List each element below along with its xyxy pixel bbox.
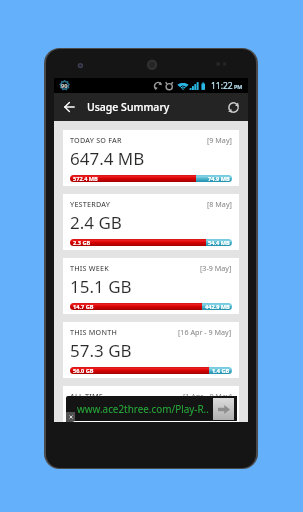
button[interactable]: ALL TIME	[63, 386, 239, 422]
staticText: [3-9 May]	[200, 263, 232, 273]
staticText: 647.4 MB	[70, 147, 145, 170]
staticText: THIS MONTH	[70, 327, 118, 337]
staticText: 81.4 GB	[70, 403, 132, 422]
staticText: [1 Apr - 9 May]	[183, 391, 232, 401]
staticText: 54.4 MB	[208, 239, 230, 246]
staticText: 2.3 GB	[73, 239, 91, 246]
staticText: THIS WEEK	[70, 263, 109, 273]
button[interactable]: Close ad	[66, 412, 75, 422]
button[interactable]: THIS MONTH	[63, 322, 239, 378]
button[interactable]: YESTERDAY	[63, 194, 239, 250]
staticText: 2.4 GB	[70, 211, 122, 234]
button[interactable]: www.ace2three.com/Play-R..	[66, 396, 237, 421]
staticText: www.ace2three.com/Play-R..	[77, 402, 209, 415]
staticText: PM	[234, 83, 243, 90]
staticText: TODAY SO FAR	[70, 135, 122, 145]
button[interactable]: Back	[58, 95, 80, 119]
staticText: 14.7 GB	[73, 303, 94, 310]
button[interactable]: THIS WEEK	[63, 258, 239, 314]
button[interactable]: Open ad	[213, 398, 234, 420]
staticText: 57.3 GB	[70, 339, 132, 362]
staticText: 1.4 GB	[212, 367, 230, 374]
staticText: 572.4 MB	[73, 175, 98, 182]
staticText: 90	[61, 82, 68, 90]
staticText: 74.9 MB	[208, 175, 230, 182]
staticText: Usage Summary	[87, 100, 170, 114]
staticText: [9 May]	[207, 135, 232, 145]
button[interactable]: Refresh	[222, 96, 244, 118]
staticText: 15.1 GB	[70, 275, 132, 298]
staticText: 11:22	[211, 80, 233, 92]
staticText: 56.0 GB	[73, 367, 94, 374]
staticText: [8 May]	[207, 199, 232, 209]
staticText: 442.9 MB	[205, 303, 230, 310]
button[interactable]: TODAY SO FAR	[63, 130, 239, 186]
staticText: [16 Apr - 9 May]	[178, 327, 232, 337]
staticText: YESTERDAY	[70, 199, 111, 209]
staticText: ALL TIME	[70, 391, 104, 401]
